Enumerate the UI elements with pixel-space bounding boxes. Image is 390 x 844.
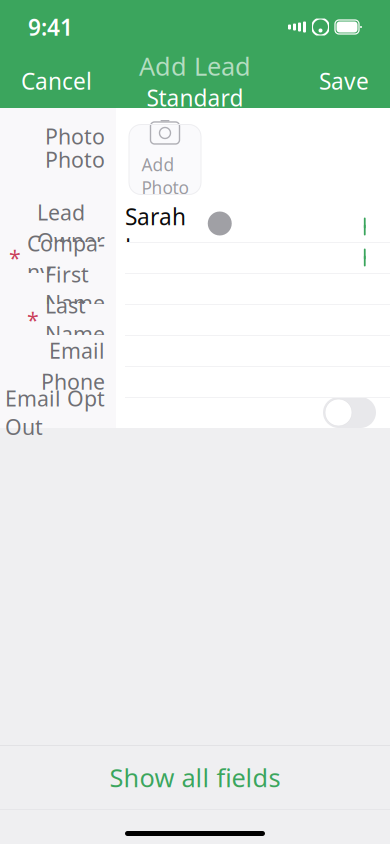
staticText: Email	[49, 336, 105, 365]
button[interactable]: Show all fields	[0, 746, 390, 809]
staticText: Cancel	[21, 66, 92, 96]
staticText: Show all fields	[109, 761, 280, 794]
button[interactable]: First Name	[0, 273, 390, 304]
staticText: *	[9, 243, 21, 272]
button[interactable]: Email Opt Out	[0, 397, 390, 428]
staticText: Company	[27, 229, 105, 286]
staticText: Sarah Jonas	[125, 201, 186, 262]
staticText: Standard	[146, 83, 243, 113]
staticText: Email Opt Out	[5, 384, 105, 441]
button[interactable]: Email	[0, 335, 390, 366]
button[interactable]: *	[0, 304, 390, 335]
staticText: Photo	[45, 145, 105, 174]
staticText: Phone	[41, 367, 105, 396]
staticText: 9:41	[28, 12, 73, 42]
staticText: *	[27, 305, 39, 334]
staticText: Save	[319, 66, 369, 96]
staticText: First Name	[45, 260, 105, 317]
staticText: Lead Owner	[37, 198, 105, 255]
staticText: Last Name	[45, 291, 105, 348]
button[interactable]: Save	[309, 58, 379, 104]
button[interactable]: Add Photo	[129, 124, 201, 194]
button[interactable]: Phone	[0, 366, 390, 397]
staticText: Add Photo	[141, 153, 188, 199]
button[interactable]: *	[0, 242, 390, 273]
staticText: Add Lead	[139, 49, 251, 83]
staticText: Photo	[45, 122, 105, 150]
button[interactable]: Cancel	[11, 58, 102, 104]
button[interactable]: Lead Owner	[0, 211, 390, 242]
